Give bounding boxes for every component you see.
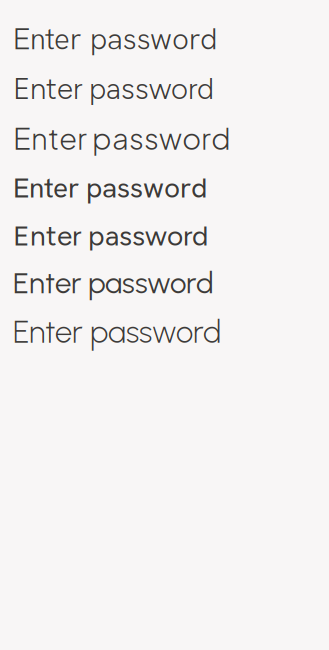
staticText: Enter password	[13, 71, 214, 106]
staticText: Enter password	[13, 119, 231, 156]
staticText: Enter password	[13, 169, 207, 206]
staticText: Enter password	[13, 314, 221, 350]
staticText: Enter password	[13, 20, 217, 58]
staticText: Enter password	[13, 265, 214, 301]
staticText: Enter password	[13, 219, 208, 252]
